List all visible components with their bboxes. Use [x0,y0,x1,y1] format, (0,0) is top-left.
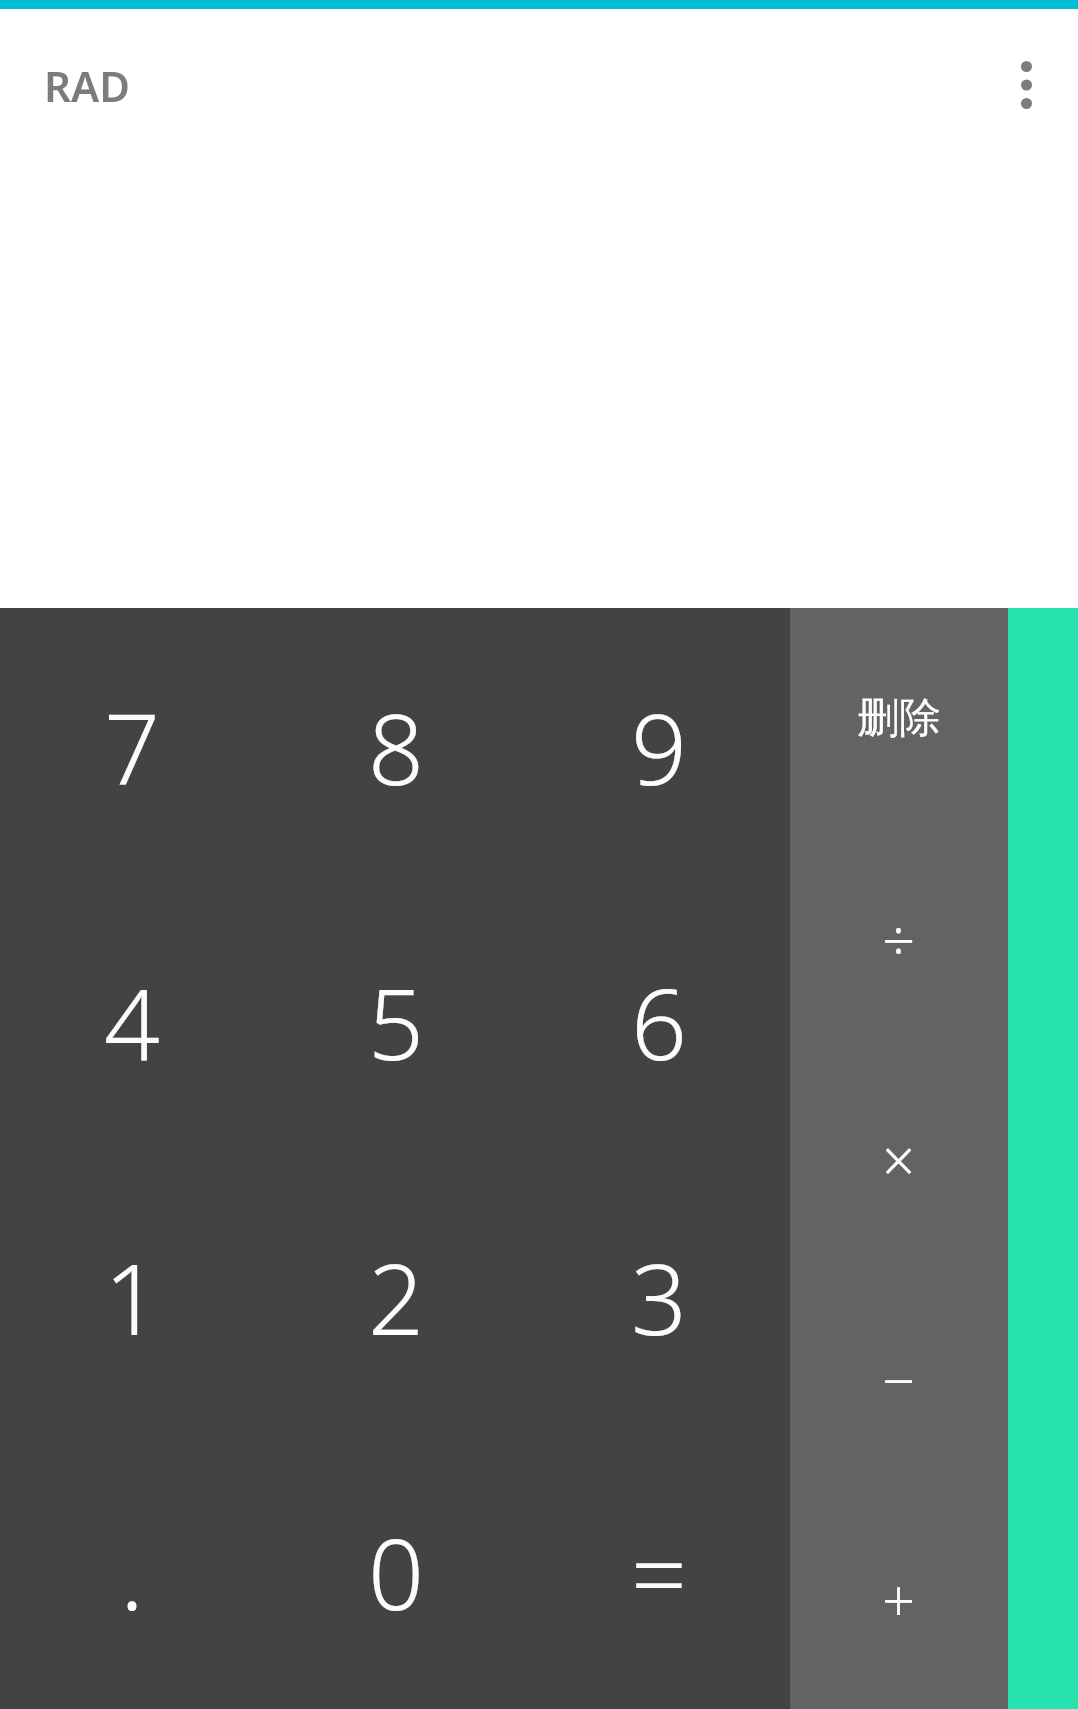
staticText: 6 [631,955,687,1088]
staticText: 0 [368,1505,424,1638]
staticText: 5 [368,955,424,1088]
button[interactable]: 8 [264,608,527,884]
button[interactable]: 0 [264,1434,527,1709]
staticText: 删除 [857,692,941,745]
button[interactable]: 1 [0,1159,264,1434]
staticText: 7 [104,680,160,813]
button[interactable]: Add [790,1489,1008,1709]
button[interactable]: = [527,1434,790,1709]
staticText: 4 [104,955,160,1088]
staticText: 2 [368,1230,424,1363]
staticText: 8 [368,680,424,813]
button[interactable]: 3 [527,1159,790,1434]
staticText: − [882,1340,916,1419]
button[interactable]: 4 [0,884,264,1159]
staticText: 9 [631,680,687,813]
staticText: ÷ [882,900,916,979]
button[interactable]: Divide [790,829,1008,1049]
button[interactable]: . [0,1434,264,1709]
button[interactable]: 6 [527,884,790,1159]
button[interactable]: Delete [790,608,1008,829]
button[interactable]: Multiply [790,1049,1008,1269]
button[interactable]: 7 [0,608,264,884]
staticText: 3 [631,1230,687,1363]
staticText: 1 [104,1230,160,1363]
button[interactable]: RAD [44,57,130,114]
button[interactable]: 5 [264,884,527,1159]
staticText: × [882,1120,916,1199]
staticText: = [631,1505,687,1638]
button[interactable]: 9 [527,608,790,884]
staticText: + [882,1560,916,1639]
button[interactable]: More options [974,9,1078,161]
staticText: . [120,1505,144,1638]
button[interactable]: Subtract [790,1269,1008,1489]
button[interactable]: 2 [264,1159,527,1434]
